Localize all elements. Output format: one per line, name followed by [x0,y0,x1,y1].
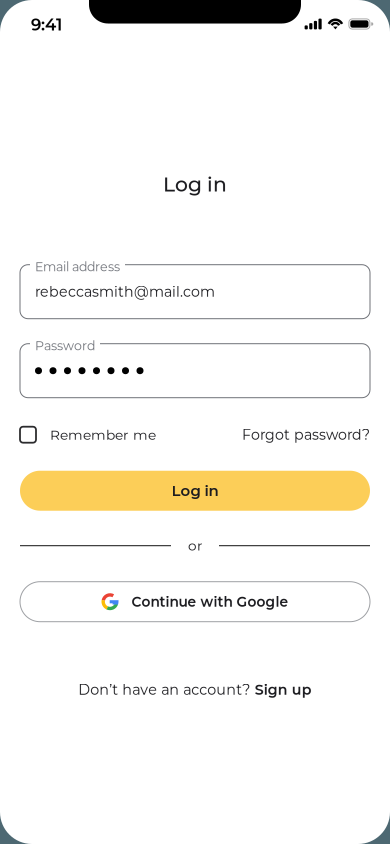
staticText: Log in [163,172,227,197]
button[interactable]: Log in [20,471,370,511]
staticText: Email address [35,259,120,274]
staticText: Password [35,338,95,353]
staticText: Don’t have an account? [78,681,250,698]
button[interactable]: Forgot password? [242,426,370,443]
staticText: Continue with Google [131,593,288,610]
button[interactable]: Remember me [20,426,156,443]
staticText: 9:41 [31,14,62,35]
staticText: or [188,537,202,554]
staticText: Log in [171,482,218,500]
staticText: Sign up [255,681,312,698]
button[interactable]: Continue with Google [20,582,370,622]
staticText: rebeccasmith@mail.com [35,283,215,300]
staticText: Forgot password? [242,426,370,443]
button[interactable]: Sign up [255,681,312,698]
staticText: Remember me [50,426,156,443]
